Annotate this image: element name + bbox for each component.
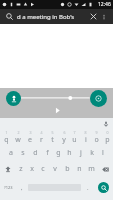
staticText: 5 [51,130,54,135]
staticText: b [65,164,70,174]
staticText: 3 [29,130,32,135]
staticText: 4 [40,130,43,135]
button[interactable]: Search [4,11,15,22]
staticText: k [90,148,94,158]
staticText: 1 [5,130,8,135]
staticText: c [41,164,45,174]
button[interactable]: 5 [47,129,58,145]
button[interactable]: Start location [6,91,21,106]
staticText: s [21,148,25,158]
button[interactable]: z [15,161,26,177]
staticText: 8 [84,130,87,135]
button[interactable]: f [41,145,53,161]
button[interactable]: d [29,145,41,161]
staticText: 7 [73,130,76,135]
staticText: ?123 [4,185,13,190]
button[interactable]: s [17,145,29,161]
staticText: m [88,164,95,174]
staticText: i [85,135,87,145]
staticText: , [21,184,23,192]
button[interactable]: 7 [69,129,80,145]
staticText: v [53,164,57,174]
staticText: w [15,135,21,145]
button[interactable]: c [37,161,49,177]
staticText: p [105,135,110,145]
button[interactable]: v [49,161,61,177]
staticText: y [62,135,66,145]
button[interactable]: a [5,145,17,161]
staticText: o [94,135,99,145]
button[interactable]: n [73,161,85,177]
staticText: u [72,135,77,145]
button[interactable]: More options [99,12,109,22]
button[interactable]: h [64,145,75,161]
staticText: q [4,135,9,145]
button[interactable]: x [26,161,37,177]
staticText: n [77,164,82,174]
button[interactable]: j [75,145,86,161]
button[interactable]: 2 [12,129,24,145]
staticText: f [46,148,49,158]
staticText: . [87,184,89,192]
staticText: 6 [63,130,66,135]
staticText: d [33,148,38,158]
button[interactable]: Play [52,105,62,115]
staticText: h [67,148,72,158]
staticText: 2 [17,130,20,135]
staticText: t [51,135,54,145]
button[interactable]: 4 [36,129,47,145]
button[interactable]: 1 [0,129,12,145]
button[interactable]: 9 [91,129,102,145]
staticText: g [56,148,61,158]
staticText: z [19,164,23,174]
button[interactable]: Destination [90,90,107,107]
button[interactable]: Clear search [88,11,99,22]
staticText: 9 [95,130,98,135]
staticText: 12:46 [98,1,111,8]
staticText: a [9,148,13,158]
button[interactable]: ?123 [0,177,16,198]
button[interactable]: 6 [58,129,69,145]
button[interactable]: m [85,161,97,177]
staticText: l [102,148,104,158]
staticText: d a meeting in Bob's office [17,13,88,21]
button[interactable]: 3 [24,129,36,145]
button[interactable]: g [53,145,64,161]
staticText: r [40,135,43,145]
staticText: j [80,148,82,158]
button[interactable]: Search [93,177,113,198]
button[interactable]: Shift [0,161,15,177]
button[interactable]: Voice input [101,119,110,128]
button[interactable]: 0 [102,129,113,145]
staticText: 0 [106,130,109,135]
button[interactable]: k [86,145,97,161]
staticText: x [30,164,34,174]
button[interactable]: b [61,161,73,177]
button[interactable]: 8 [80,129,91,145]
button[interactable]: Backspace [97,161,113,177]
button[interactable]: , [16,177,27,198]
button[interactable]: l [97,145,108,161]
staticText: e [28,135,32,145]
